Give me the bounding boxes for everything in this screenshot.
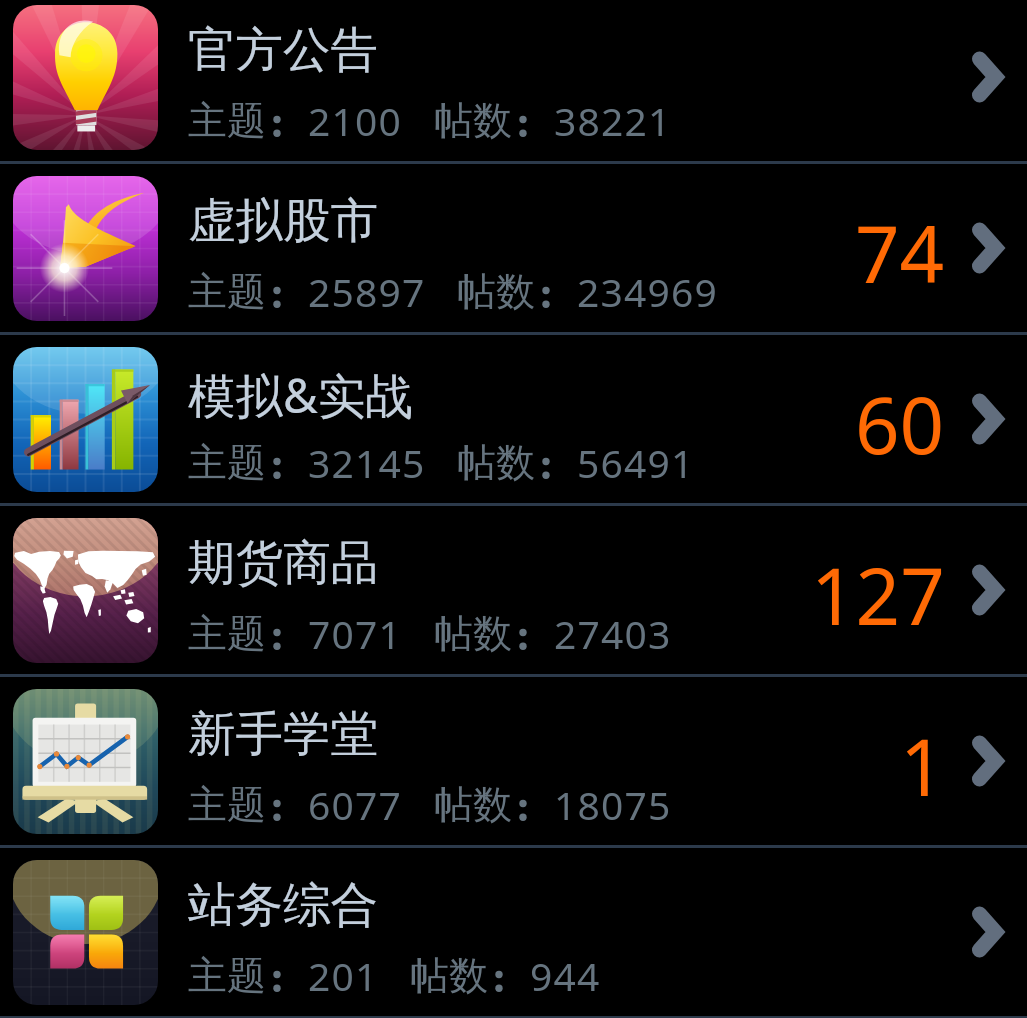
- staticText: 127: [811, 542, 945, 648]
- staticText: 站务综合: [188, 875, 378, 935]
- button[interactable]: 站务综合: [0, 848, 1027, 1016]
- staticText: 32145: [308, 436, 426, 489]
- staticText: 主题: [188, 609, 266, 658]
- staticText: 2100: [308, 94, 403, 147]
- button[interactable]: 官方公告: [0, 0, 1027, 161]
- other: Open: [955, 727, 1003, 795]
- staticText: 27403: [554, 607, 672, 660]
- button[interactable]: 新手学堂: [0, 677, 1027, 845]
- staticText: 6077: [308, 778, 403, 831]
- staticText: 7071: [308, 607, 403, 660]
- staticText: 1: [900, 713, 945, 819]
- staticText: 帖数: [434, 609, 512, 658]
- staticText: 帖数: [410, 951, 488, 1000]
- other: Open: [955, 898, 1003, 966]
- other: Open: [955, 385, 1003, 453]
- staticText: 18075: [554, 778, 672, 831]
- staticText: 56491: [577, 436, 695, 489]
- staticText: 60: [855, 371, 945, 477]
- staticText: 主题: [188, 780, 266, 829]
- other: Open: [955, 556, 1003, 624]
- staticText: 帖数: [457, 438, 535, 487]
- staticText: 官方公告: [188, 20, 378, 80]
- button[interactable]: 期货商品: [0, 506, 1027, 674]
- staticText: 主题: [188, 96, 266, 145]
- staticText: 帖数: [434, 780, 512, 829]
- staticText: 主题: [188, 438, 266, 487]
- staticText: 新手学堂: [188, 704, 378, 764]
- other: Open: [955, 43, 1003, 111]
- staticText: 主题: [188, 267, 266, 316]
- staticText: 虚拟股市: [188, 191, 378, 251]
- button[interactable]: 模拟&实战: [0, 335, 1027, 503]
- staticText: 帖数: [434, 96, 512, 145]
- staticText: 25897: [308, 265, 426, 318]
- staticText: 帖数: [457, 267, 535, 316]
- staticText: 期货商品: [188, 533, 378, 593]
- button[interactable]: 虚拟股市: [0, 164, 1027, 332]
- staticText: 74: [855, 200, 945, 306]
- staticText: 234969: [577, 265, 719, 318]
- staticText: 主题: [188, 951, 266, 1000]
- staticText: 944: [530, 949, 601, 1002]
- staticText: 模拟&实战: [188, 362, 413, 427]
- staticText: 201: [308, 949, 379, 1002]
- other: Open: [955, 214, 1003, 282]
- staticText: 38221: [554, 94, 672, 147]
